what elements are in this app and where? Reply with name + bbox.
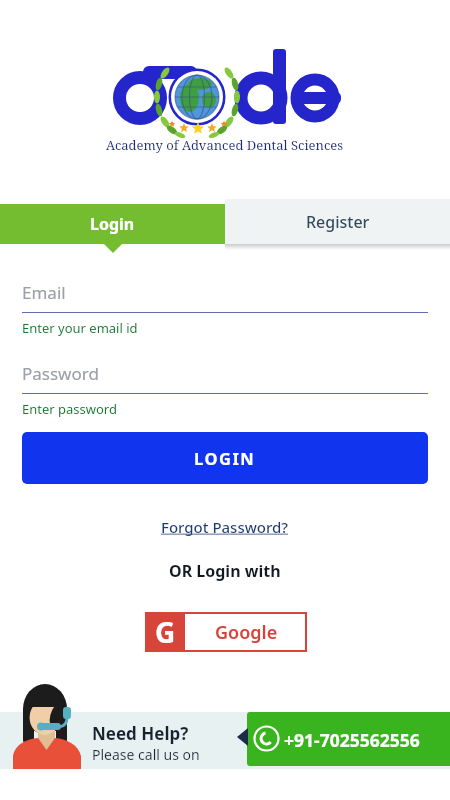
- staticText: Enter password: [22, 400, 117, 418]
- staticText: Password: [22, 362, 99, 385]
- button[interactable]: LOGIN: [22, 432, 428, 484]
- button[interactable]: Login: [0, 204, 225, 244]
- button[interactable]: +91-7025562556: [247, 712, 450, 766]
- staticText: Enter your email id: [22, 319, 138, 337]
- staticText: Please call us on: [92, 745, 200, 764]
- staticText: OR Login with: [169, 560, 281, 582]
- staticText: +91-7025562556: [284, 728, 420, 752]
- button[interactable]: Register: [225, 199, 450, 244]
- button[interactable]: Forgot Password?: [161, 517, 289, 537]
- staticText: Login: [90, 213, 135, 235]
- staticText: LOGIN: [194, 447, 256, 469]
- staticText: Email: [22, 281, 66, 304]
- staticText: Google: [215, 620, 278, 645]
- staticText: Register: [306, 211, 370, 233]
- staticText: Need Help?: [92, 722, 189, 745]
- staticText: G: [155, 613, 176, 651]
- staticText: Academy of Advanced Dental Sciences: [106, 136, 344, 154]
- button[interactable]: G: [145, 612, 307, 652]
